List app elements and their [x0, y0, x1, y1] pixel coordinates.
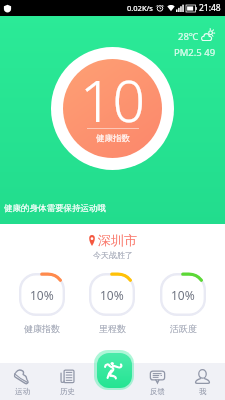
- button[interactable]: 反馈: [135, 363, 180, 400]
- button[interactable]: 开始运动: [94, 350, 134, 390]
- staticText: 10%: [100, 287, 124, 303]
- button[interactable]: 10%: [19, 273, 65, 334]
- staticText: 历史: [60, 387, 75, 396]
- staticText: 10: [80, 61, 146, 139]
- staticText: 活跃度: [170, 323, 197, 334]
- staticText: 健康的身体需要保持运动哦: [4, 203, 106, 214]
- staticText: 里程数: [99, 323, 126, 334]
- button[interactable]: 10%: [89, 273, 135, 334]
- staticText: 深圳市: [98, 232, 137, 248]
- staticText: 10%: [30, 287, 54, 303]
- staticText: 0.02K/s: [127, 3, 153, 13]
- staticText: 反馈: [150, 387, 165, 396]
- staticText: 今天战胜了: [93, 250, 133, 260]
- staticText: 10%: [171, 287, 195, 303]
- staticText: 我: [199, 387, 207, 396]
- staticText: PM2.5 49: [174, 46, 216, 59]
- button[interactable]: 我: [180, 363, 225, 400]
- staticText: 21:48: [199, 2, 221, 14]
- staticText: 健康指数: [96, 133, 130, 144]
- staticText: 28℃: [178, 30, 199, 43]
- staticText: 健康指数: [24, 323, 60, 334]
- button[interactable]: 10%: [160, 273, 206, 334]
- staticText: 运动: [15, 387, 30, 396]
- button[interactable]: 历史: [45, 363, 90, 400]
- button[interactable]: 运动: [0, 363, 45, 400]
